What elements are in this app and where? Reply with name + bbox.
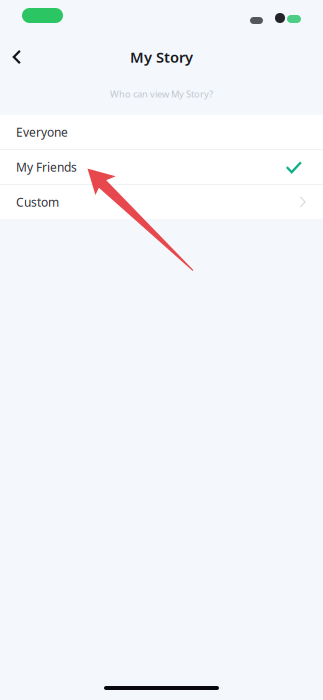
staticText: Everyone — [16, 124, 68, 140]
staticText: Custom — [16, 194, 59, 210]
button[interactable]: Everyone — [0, 115, 323, 149]
button[interactable]: My Friends — [0, 150, 323, 184]
staticText: Who can view My Story? — [110, 88, 213, 100]
button[interactable]: Back — [0, 40, 33, 74]
staticText: My Friends — [16, 159, 77, 175]
button[interactable]: Custom — [0, 185, 323, 219]
staticText: My Story — [130, 47, 193, 67]
